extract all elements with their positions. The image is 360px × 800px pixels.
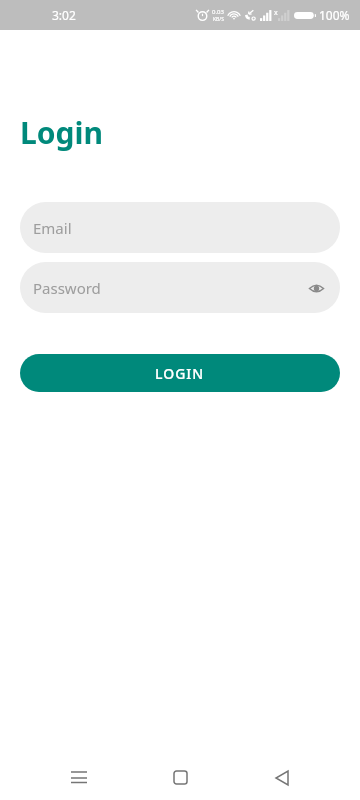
button[interactable]: Show password xyxy=(305,277,327,299)
staticText: 3:02 xyxy=(52,7,76,23)
staticText: LOGIN xyxy=(155,364,205,383)
staticText: 0.03 xyxy=(212,8,224,16)
button[interactable]: Home xyxy=(157,755,203,800)
staticText: x xyxy=(274,8,278,18)
staticText: 100% xyxy=(319,7,350,23)
button[interactable]: Back xyxy=(259,755,305,800)
staticText: KB/S xyxy=(213,16,224,23)
staticText: Login xyxy=(20,112,103,153)
button[interactable]: LOGIN xyxy=(20,354,340,392)
staticText: Email xyxy=(33,218,72,238)
button[interactable]: Password xyxy=(20,262,340,313)
staticText: Password xyxy=(33,278,101,298)
button[interactable]: Email xyxy=(20,202,340,253)
button[interactable]: Recent apps xyxy=(56,755,102,800)
